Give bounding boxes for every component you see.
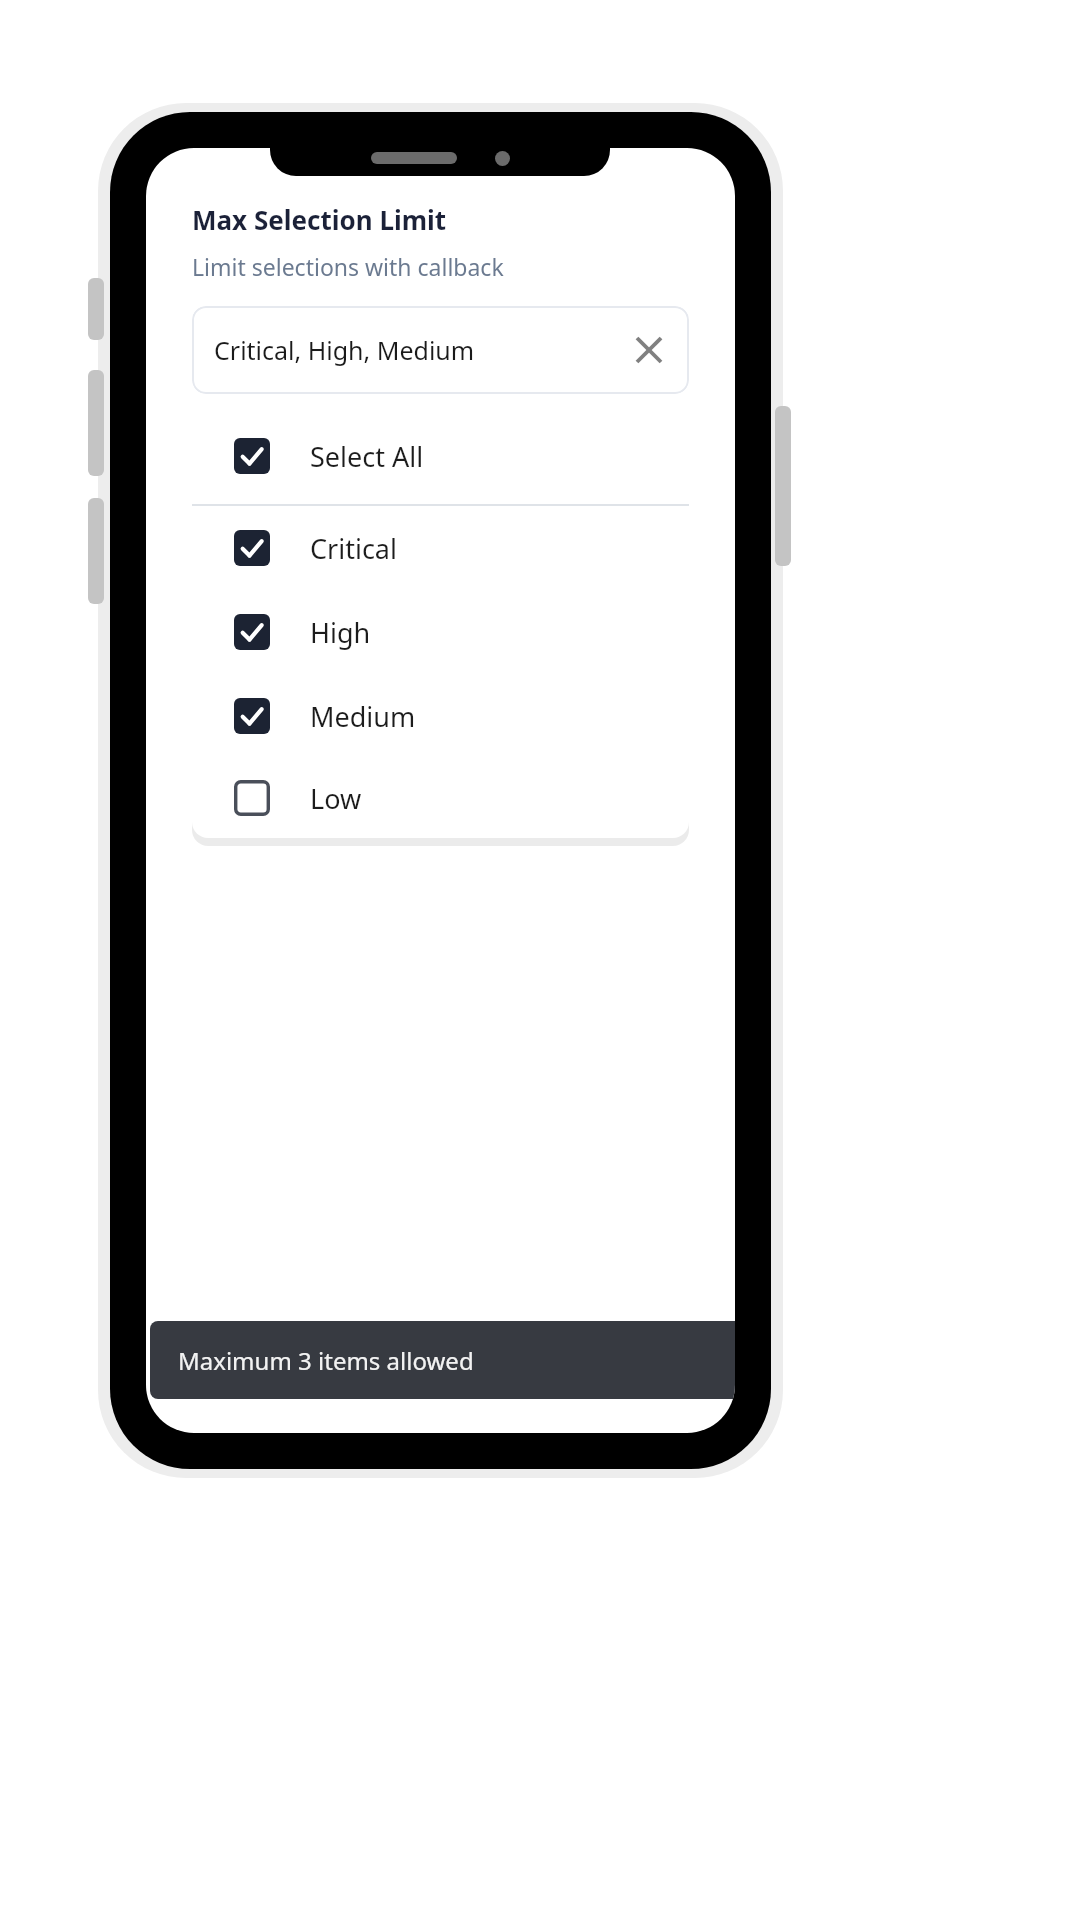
button[interactable]: Low (192, 758, 689, 838)
button[interactable]: Critical, High, Medium (192, 306, 689, 394)
button[interactable]: Critical (192, 506, 689, 590)
button[interactable]: Select All (192, 408, 689, 504)
staticText: High (310, 614, 371, 651)
button[interactable]: Maximum 3 items allowed (150, 1321, 735, 1399)
staticText: Low (310, 780, 362, 817)
button[interactable]: Medium (192, 674, 689, 758)
staticText: Limit selections with callback (192, 251, 504, 282)
button[interactable]: High (192, 590, 689, 674)
staticText: Critical (310, 530, 397, 567)
staticText: Critical, High, Medium (214, 333, 475, 367)
staticText: Maximum 3 items allowed (178, 1344, 474, 1377)
button[interactable]: Clear selection (621, 322, 677, 378)
staticText: Medium (310, 698, 416, 735)
staticText: Select All (310, 438, 424, 475)
staticText: Max Selection Limit (192, 202, 447, 237)
